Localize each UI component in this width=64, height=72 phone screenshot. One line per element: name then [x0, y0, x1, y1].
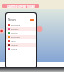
staticText: World — [11, 48, 18, 51]
button[interactable]: Breaking — [8, 23, 34, 27]
staticText: News — [8, 18, 16, 22]
button[interactable]: Tech — [8, 39, 34, 43]
staticText: English — [11, 28, 19, 31]
button[interactable]: Subscribe — [30, 19, 34, 21]
staticText: Sports — [11, 32, 18, 35]
staticText: LIMITED OFFER TODAY — [7, 5, 35, 8]
staticText: Breaking — [11, 24, 21, 27]
button[interactable]: English — [8, 27, 34, 31]
staticText: Tech — [11, 40, 16, 43]
staticText: Business — [11, 36, 21, 39]
staticText: Health — [11, 44, 18, 47]
button[interactable]: Health — [8, 43, 34, 47]
button[interactable]: World — [8, 47, 34, 51]
button[interactable]: Business — [8, 35, 34, 39]
button[interactable]: LIMITED OFFER TODAY — [2, 4, 39, 8]
button[interactable]: Sports — [8, 31, 34, 35]
